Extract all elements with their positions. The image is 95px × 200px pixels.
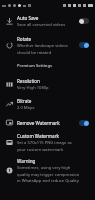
staticText: 2.0 Mbps bbox=[17, 105, 35, 111]
staticText: Resolution bbox=[17, 78, 40, 84]
button[interactable]: Rotate bbox=[0, 32, 95, 58]
staticText: Very High 1080p bbox=[17, 85, 49, 91]
staticText: Bitrate bbox=[17, 98, 32, 104]
button[interactable]: Warning bbox=[0, 154, 95, 186]
staticText: Whether landscape videos should be rotat… bbox=[17, 43, 68, 55]
staticText: Rotate bbox=[17, 36, 32, 42]
button[interactable]: Bitrate bbox=[0, 94, 95, 114]
staticText: Save all converted videos bbox=[17, 22, 66, 28]
button[interactable]: Toggle bbox=[79, 120, 89, 126]
button[interactable]: Toggle bbox=[79, 42, 89, 48]
button[interactable]: Resolution bbox=[0, 74, 95, 94]
button[interactable]: Auto Save bbox=[0, 11, 95, 31]
staticText: Custom Watermark bbox=[17, 133, 59, 139]
staticText: Remove Watermark bbox=[17, 120, 60, 126]
staticText: Sometimes, using very high quality may t… bbox=[17, 165, 80, 183]
button[interactable]: Remove Watermark bbox=[0, 115, 95, 130]
staticText: Set a 570x115 PNG image as your custom w… bbox=[17, 140, 72, 152]
staticText: Auto Save bbox=[17, 15, 39, 21]
button[interactable]: Toggle bbox=[79, 18, 89, 24]
staticText: Warning bbox=[17, 158, 36, 164]
button[interactable]: Custom Watermark bbox=[0, 129, 95, 155]
staticText: Premium Settings bbox=[17, 63, 95, 69]
